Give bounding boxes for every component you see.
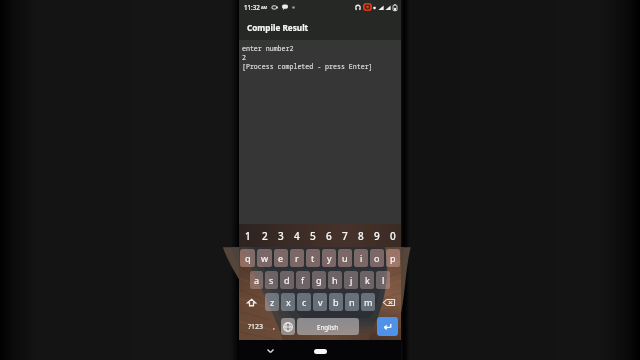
staticText: n [349,296,355,308]
staticText: o [374,252,380,264]
button[interactable]: e [274,249,288,267]
button[interactable]: 2 [256,224,273,247]
button[interactable]: English [297,318,359,335]
staticText: b [333,296,339,308]
button[interactable]: 7 [337,224,353,247]
button[interactable]: 4 [289,224,305,247]
button[interactable]: k [360,271,374,289]
button[interactable]: a [250,271,263,289]
staticText: h [332,274,338,286]
staticText: r [295,252,299,264]
staticText: i [360,252,363,264]
staticText: j [350,274,353,286]
staticText: g [316,274,322,286]
staticText: 6 [326,229,332,243]
staticText: m [364,296,373,308]
staticText: c [302,296,307,308]
button[interactable]: Hide keyboard [263,344,277,358]
button[interactable]: s [265,271,278,289]
staticText: [Process completed - press Enter] [242,62,373,71]
staticText: 0 [390,229,396,243]
button[interactable]: g [312,271,326,289]
button[interactable]: w [257,249,272,267]
button[interactable]: l [376,271,390,289]
staticText: 7 [342,229,348,243]
staticText: p [390,252,396,264]
staticText: e [278,252,284,264]
button[interactable]: Compile Result [239,14,401,40]
staticText: y [327,252,332,264]
staticText: 11:32 [244,3,260,11]
staticText: w [261,252,269,264]
staticText: f [301,274,305,286]
button[interactable]: h [328,271,342,289]
staticText: l [382,274,385,286]
button[interactable]: Backspace [376,291,401,313]
staticText: enter number2 [242,44,294,53]
button[interactable]: 3 [273,224,289,247]
button[interactable]: m [361,293,375,311]
button[interactable]: q [240,249,255,267]
staticText: 3 [278,229,284,243]
staticText: d [284,274,290,286]
staticText: English [317,323,339,331]
button[interactable]: f [296,271,310,289]
staticText: u [342,252,348,264]
button[interactable]: p [386,249,400,267]
button[interactable]: r [290,249,304,267]
staticText: 9 [374,229,380,243]
staticText: z [270,296,275,308]
staticText: Compile Result [247,22,309,33]
button[interactable]: d [280,271,294,289]
button[interactable]: n [345,293,359,311]
button[interactable]: Enter [377,317,398,336]
staticText: 5 [310,229,316,243]
staticText: t [311,252,315,264]
staticText: AM [261,5,268,10]
staticText: ?123 [248,322,264,332]
staticText: , [273,322,275,332]
button[interactable]: , [267,313,281,340]
staticText: 4 [294,229,300,243]
button[interactable]: v [313,293,327,311]
button[interactable]: 0 [385,224,401,247]
button[interactable]: 1 [239,224,256,247]
button[interactable]: ?123 [241,313,271,340]
button[interactable]: x [281,293,295,311]
button[interactable]: 6 [321,224,337,247]
staticText: 1 [245,229,251,243]
button[interactable]: 8 [353,224,369,247]
button[interactable]: 9 [369,224,385,247]
button[interactable]: Shift [239,291,264,313]
button[interactable]: o [370,249,384,267]
button[interactable]: b [329,293,343,311]
staticText: x [286,296,291,308]
staticText: s [269,274,274,286]
staticText: 2 [262,229,268,243]
button[interactable]: j [344,271,358,289]
staticText: q [245,252,251,264]
staticText: k [365,274,370,286]
button[interactable]: i [354,249,368,267]
button[interactable]: 5 [305,224,321,247]
button[interactable]: t [306,249,320,267]
button[interactable]: z [265,293,279,311]
button[interactable]: u [338,249,352,267]
button[interactable]: Change keyboard language [281,318,295,335]
button[interactable]: c [297,293,311,311]
button[interactable]: y [322,249,336,267]
staticText: 8 [358,229,364,243]
staticText: a [254,274,260,286]
staticText: v [318,296,323,308]
staticText: 2 [242,53,246,62]
